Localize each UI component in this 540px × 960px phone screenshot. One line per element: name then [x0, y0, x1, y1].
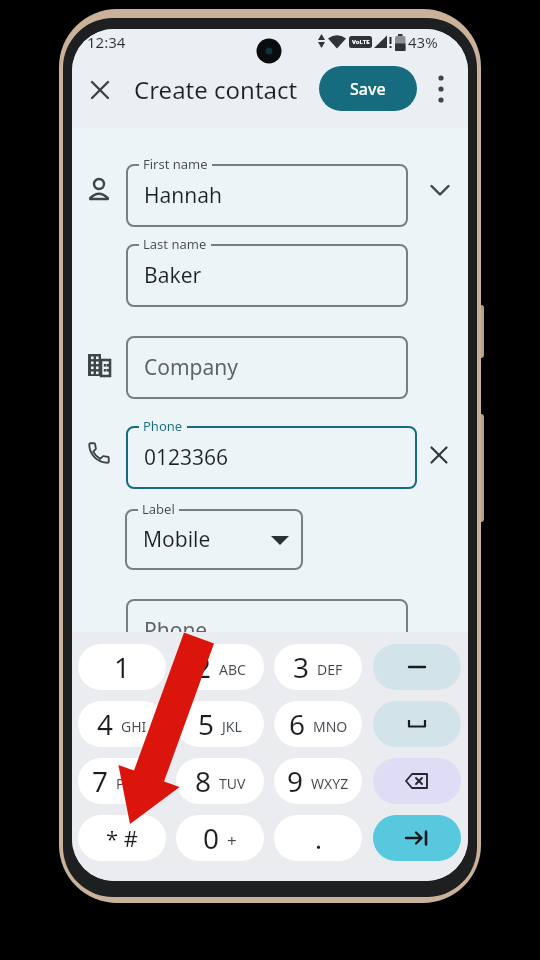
button[interactable]: [436, 74, 446, 104]
staticText: 6: [289, 705, 306, 743]
button[interactable]: [373, 644, 461, 690]
staticText: TUV: [219, 774, 246, 793]
button[interactable]: 9: [274, 758, 362, 804]
staticText: Create contact: [134, 73, 298, 106]
staticText: 7: [92, 762, 109, 800]
staticText: Mobile: [143, 525, 211, 554]
staticText: 12:34: [87, 32, 126, 50]
button[interactable]: Company: [126, 336, 408, 399]
staticText: 43%: [408, 32, 438, 50]
staticText: Phone: [144, 616, 208, 645]
staticText: DEF: [317, 660, 343, 679]
button[interactable]: 0123366: [126, 426, 417, 489]
staticText: VoLTE: [352, 38, 370, 46]
button[interactable]: 2: [176, 644, 264, 690]
staticText: Baker: [144, 261, 202, 290]
button[interactable]: Phone: [126, 599, 408, 662]
button[interactable]: [91, 81, 109, 99]
button[interactable]: Hannah: [126, 164, 408, 227]
button[interactable]: 3: [274, 644, 362, 690]
button[interactable]: * #: [78, 815, 166, 861]
staticText: 9: [287, 762, 304, 800]
staticText: 0123366: [144, 443, 229, 472]
staticText: 2: [195, 648, 212, 686]
button[interactable]: 8: [176, 758, 264, 804]
staticText: ABC: [219, 660, 246, 679]
staticText: 3: [293, 648, 310, 686]
staticText: Hannah: [144, 181, 223, 210]
staticText: Save: [350, 78, 386, 100]
button[interactable]: [373, 758, 461, 804]
staticText: 8: [195, 762, 212, 800]
staticText: * #: [106, 823, 139, 853]
staticText: Company: [144, 353, 238, 382]
button[interactable]: 5: [176, 701, 264, 747]
staticText: MNO: [313, 717, 348, 736]
staticText: 5: [198, 705, 215, 743]
button[interactable]: .: [274, 815, 362, 861]
staticText: PQRS: [116, 774, 152, 793]
button[interactable]: 7: [78, 758, 166, 804]
staticText: 0: [203, 819, 220, 857]
staticText: 1: [114, 648, 131, 686]
staticText: GHI: [121, 717, 147, 736]
staticText: 4: [97, 705, 114, 743]
button[interactable]: Save: [319, 66, 417, 111]
button[interactable]: 1: [78, 644, 166, 690]
staticText: WXYZ: [311, 774, 349, 793]
button[interactable]: Baker: [126, 244, 408, 307]
button[interactable]: [373, 815, 461, 861]
staticText: JKL: [222, 717, 242, 736]
button[interactable]: [430, 446, 448, 464]
staticText: +: [227, 829, 237, 852]
staticText: First name: [143, 155, 208, 173]
button[interactable]: 4: [78, 701, 166, 747]
button[interactable]: 6: [274, 701, 362, 747]
staticText: Label: [142, 500, 175, 518]
staticText: .: [315, 821, 322, 856]
button[interactable]: 0: [176, 815, 264, 861]
button[interactable]: [373, 701, 461, 747]
button[interactable]: [430, 184, 450, 198]
staticText: Last name: [143, 235, 207, 253]
button[interactable]: Mobile: [125, 509, 303, 570]
staticText: Phone: [143, 417, 183, 435]
